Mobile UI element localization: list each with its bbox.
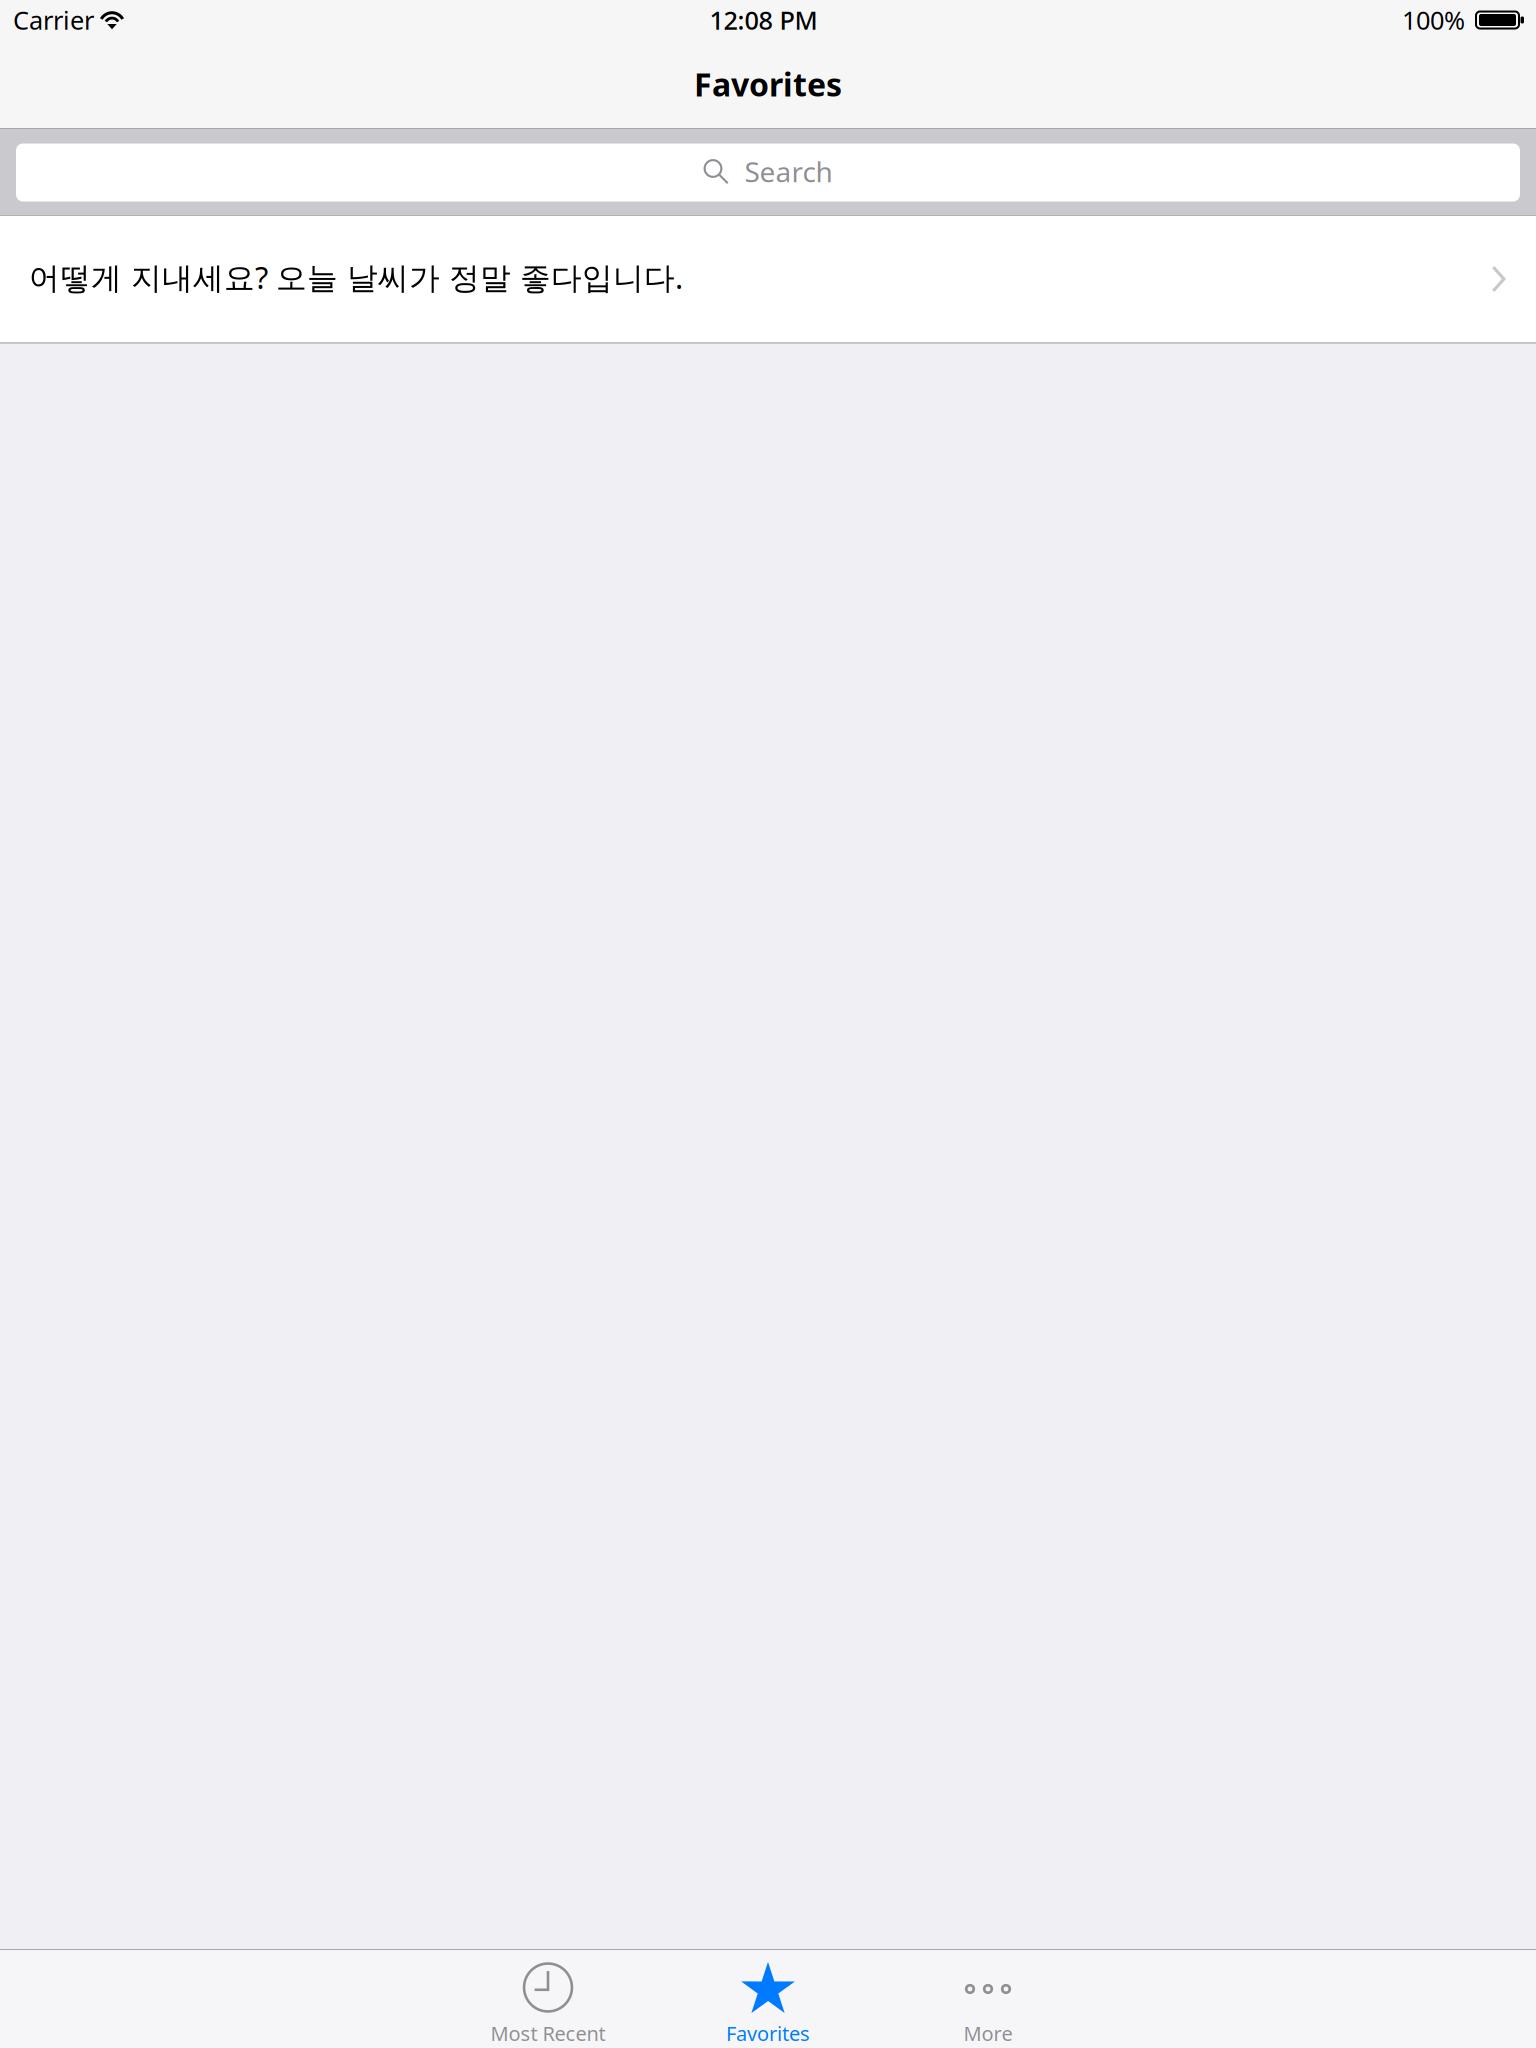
staticText: Most Recent: [490, 2020, 605, 2047]
staticText: 어떻게 지내세요? 오늘 날씨가 정말 좋다입니다.: [29, 257, 683, 297]
staticText: 100%: [1402, 3, 1465, 37]
staticText: Favorites: [694, 63, 842, 105]
staticText: Carrier: [13, 3, 94, 37]
button[interactable]: Most Recent: [438, 1950, 658, 2048]
staticText: 12:08 PM: [709, 3, 817, 37]
staticText: Favorites: [726, 2020, 810, 2047]
button[interactable]: More: [878, 1950, 1098, 2048]
staticText: Search: [744, 153, 832, 190]
button[interactable]: 어떻게 지내세요? 오늘 날씨가 정말 좋다입니다.: [0, 216, 1536, 342]
button[interactable]: Favorites: [658, 1950, 878, 2048]
staticText: More: [963, 2020, 1012, 2047]
button[interactable]: Search: [16, 143, 1520, 201]
